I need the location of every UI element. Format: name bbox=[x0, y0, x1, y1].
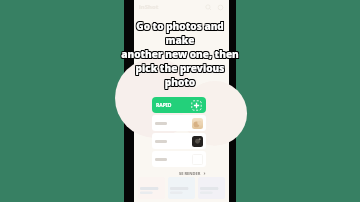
button[interactable]: Photo thumbnail bbox=[152, 151, 206, 167]
button[interactable]: Photo thumbnail bbox=[192, 118, 203, 129]
staticText: SE RENDER bbox=[179, 171, 201, 176]
staticText: pick the previous photo bbox=[121, 62, 239, 90]
staticText: another new one, then bbox=[122, 47, 240, 61]
staticText: pick the previous photo bbox=[120, 61, 238, 89]
button[interactable] bbox=[138, 177, 165, 199]
button[interactable]: Photo thumbnail bbox=[152, 115, 206, 131]
staticText: another new one, then bbox=[120, 47, 238, 61]
button[interactable]: Photo thumbnail bbox=[192, 136, 203, 147]
staticText: pick the previous photo bbox=[120, 60, 238, 88]
staticText: Go to photos and make bbox=[121, 20, 239, 48]
staticText: another new one, then bbox=[122, 48, 240, 62]
staticText: another new one, then bbox=[120, 46, 238, 60]
staticText: pick the previous photo bbox=[122, 60, 240, 88]
button[interactable]: Photo thumbnail bbox=[152, 133, 206, 149]
button[interactable]: Add new bbox=[191, 100, 202, 111]
staticText: pick the previous photo bbox=[120, 62, 238, 90]
button[interactable]: Search bbox=[205, 4, 212, 11]
button[interactable] bbox=[198, 177, 225, 199]
staticText: pick the previous photo bbox=[121, 60, 239, 88]
staticText: pick the previous photo bbox=[122, 62, 240, 90]
staticText: pick the previous photo bbox=[122, 61, 240, 89]
staticText: another new one, then bbox=[121, 48, 239, 62]
staticText: RAPID bbox=[156, 102, 172, 109]
staticText: another new one, then bbox=[122, 46, 240, 60]
staticText: another new one, then bbox=[121, 47, 239, 61]
staticText: Go to photos and make bbox=[122, 20, 240, 48]
staticText: Go to photos and make bbox=[122, 19, 240, 47]
staticText: another new one, then bbox=[121, 46, 239, 60]
staticText: Go to photos and make bbox=[122, 18, 240, 46]
button[interactable]: Settings bbox=[217, 4, 224, 11]
staticText: pick the previous photo bbox=[121, 61, 239, 89]
button[interactable]: RAPID bbox=[152, 97, 206, 113]
staticText: Go to photos and make bbox=[120, 18, 238, 46]
button[interactable]: SE RENDER bbox=[152, 171, 206, 176]
button[interactable]: Photo thumbnail bbox=[192, 154, 203, 165]
button[interactable]: inShot bbox=[139, 3, 159, 11]
staticText: another new one, then bbox=[120, 48, 238, 62]
staticText: Go to photos and make bbox=[120, 19, 238, 47]
button[interactable] bbox=[168, 177, 195, 199]
staticText: Go to photos and make bbox=[120, 20, 238, 48]
staticText: Go to photos and make bbox=[121, 18, 239, 46]
staticText: Go to photos and make bbox=[121, 19, 239, 47]
